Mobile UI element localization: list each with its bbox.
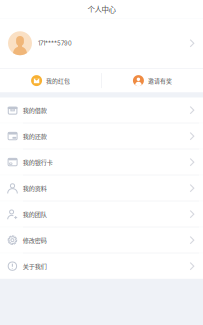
- staticText: 个人中心: [87, 4, 115, 15]
- staticText: 我的借款: [23, 106, 47, 115]
- button[interactable]: 我的银行卡: [0, 149, 203, 175]
- button[interactable]: 我的红包: [0, 69, 101, 92]
- staticText: 我的还款: [23, 132, 47, 141]
- button[interactable]: 我的资料: [0, 175, 203, 201]
- staticText: 我的团队: [23, 210, 47, 219]
- staticText: 关于我们: [23, 262, 47, 271]
- button[interactable]: 我的还款: [0, 123, 203, 149]
- button[interactable]: 我的借款: [0, 97, 203, 123]
- staticText: 我的资料: [23, 184, 47, 193]
- staticText: 我的红包: [46, 76, 70, 85]
- staticText: 171****5790: [38, 40, 72, 47]
- button[interactable]: 171****5790: [0, 18, 203, 68]
- staticText: 我的银行卡: [23, 158, 53, 167]
- button[interactable]: 修改密码: [0, 227, 203, 253]
- button[interactable]: 关于我们: [0, 253, 203, 279]
- staticText: 邀请有奖: [148, 76, 172, 85]
- button[interactable]: 我的团队: [0, 201, 203, 227]
- button[interactable]: 邀请有奖: [102, 69, 203, 92]
- staticText: 修改密码: [23, 236, 47, 245]
